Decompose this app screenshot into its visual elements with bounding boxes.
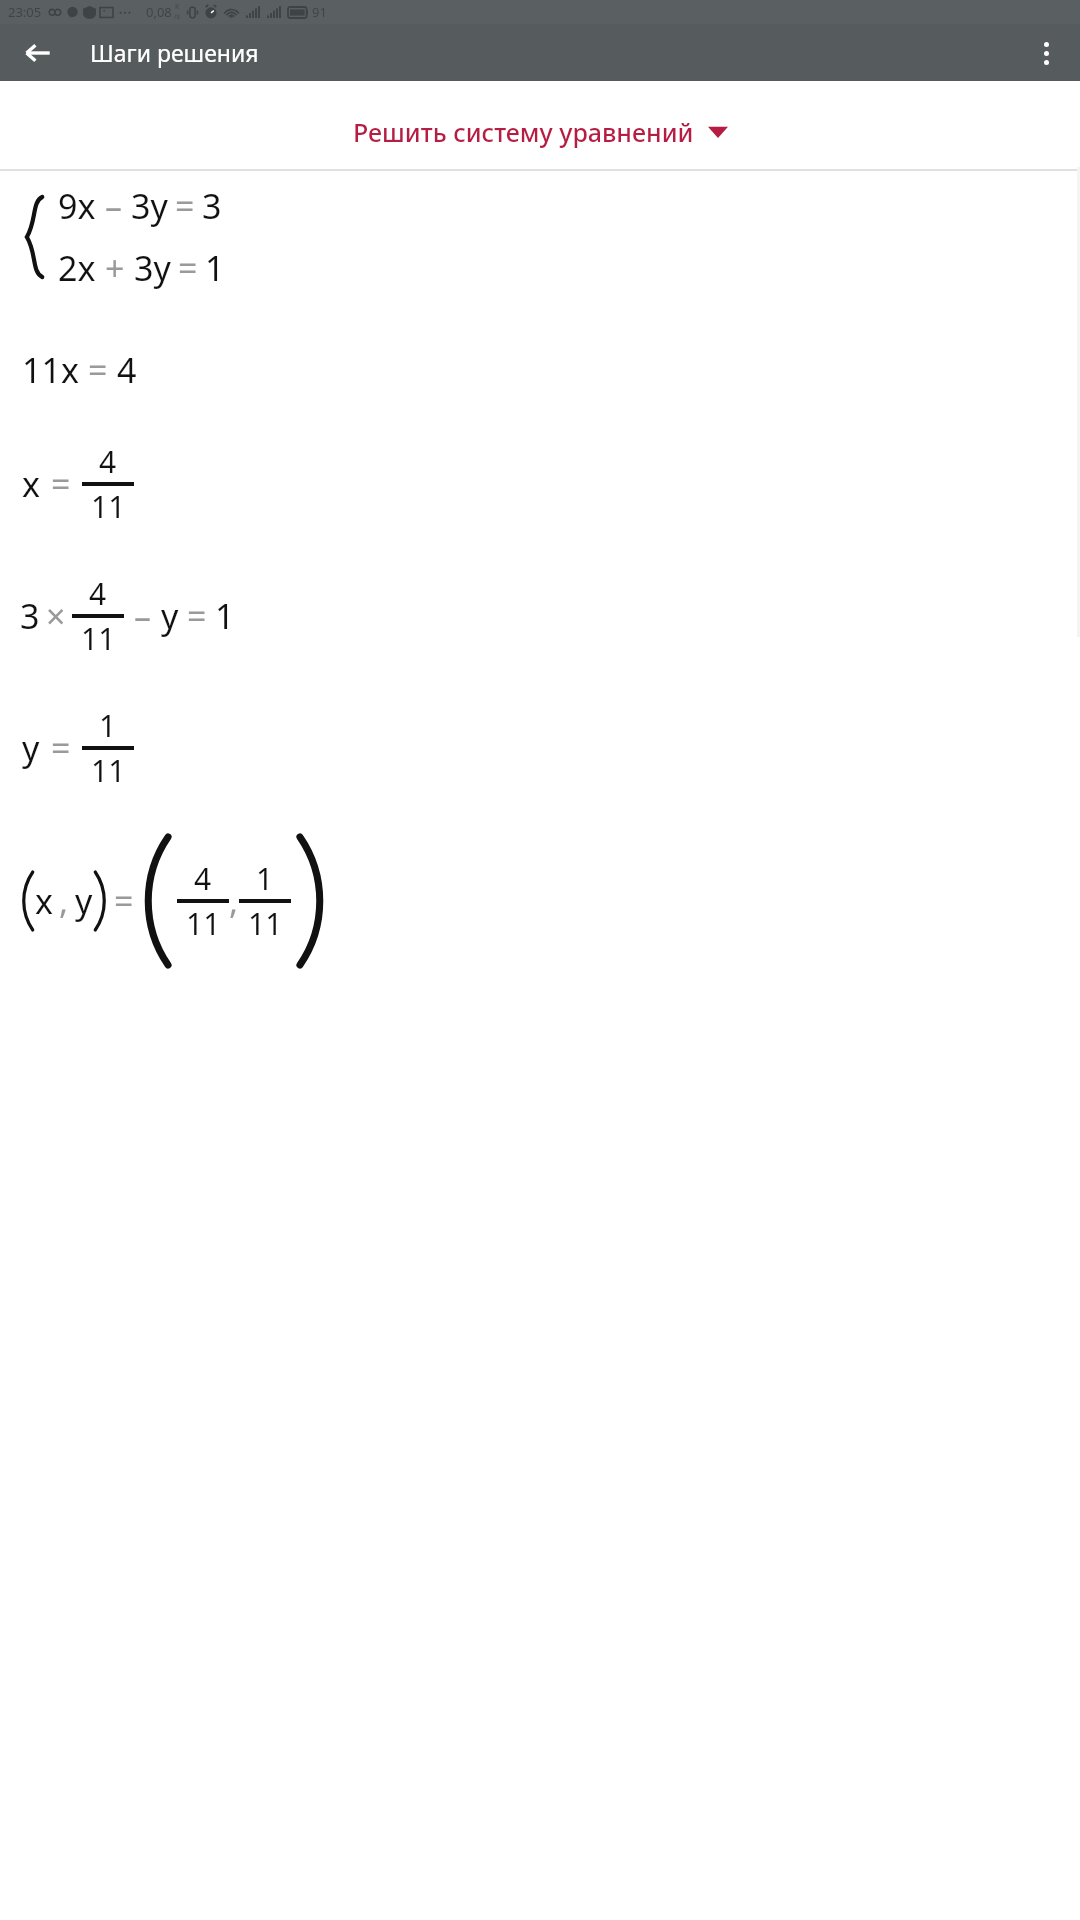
staticText: Шаги решения xyxy=(90,37,259,68)
staticText: , xyxy=(59,878,69,924)
staticText: y xyxy=(75,878,93,924)
staticText: 3 xyxy=(20,593,40,639)
staticText: = xyxy=(187,593,207,639)
staticText: 4 xyxy=(194,858,212,899)
staticText: , xyxy=(229,878,239,924)
staticText: = xyxy=(88,347,108,393)
staticText: + xyxy=(105,245,125,291)
button[interactable]: More options xyxy=(1018,25,1074,81)
staticText: y xyxy=(161,593,179,639)
staticText: 1 xyxy=(205,245,225,291)
staticText: = xyxy=(51,461,71,507)
staticText: y xyxy=(22,725,40,771)
staticText: 11 xyxy=(91,750,126,791)
staticText: 2x xyxy=(58,245,96,291)
staticText: = xyxy=(51,725,71,771)
staticText: 23:05 xyxy=(8,3,42,21)
staticText: = xyxy=(114,878,134,924)
staticText: Решить систему уравнений xyxy=(353,115,694,149)
staticText: 3y xyxy=(131,183,168,229)
button[interactable]: Решить систему уравнений xyxy=(0,109,1080,155)
staticText: = xyxy=(178,245,198,291)
staticText: 9x xyxy=(58,183,96,229)
staticText: = xyxy=(175,183,195,229)
staticText: 4 xyxy=(117,347,137,393)
staticText: 11 xyxy=(81,618,116,659)
staticText: 3y xyxy=(134,245,171,291)
staticText: × xyxy=(46,593,66,639)
staticText: x xyxy=(35,878,53,924)
staticText: 1 xyxy=(99,705,117,746)
staticText: 11x xyxy=(22,347,79,393)
staticText: 11 xyxy=(186,903,221,944)
staticText: /s xyxy=(174,12,180,22)
staticText: 91 xyxy=(312,3,327,21)
button[interactable]: Back xyxy=(10,25,66,81)
staticText: 1 xyxy=(256,858,274,899)
staticText: 4 xyxy=(89,573,107,614)
staticText: 11 xyxy=(91,486,126,527)
staticText: 1 xyxy=(215,593,235,639)
staticText: 0,08 xyxy=(146,3,172,21)
staticText: x xyxy=(22,461,40,507)
staticText: – xyxy=(134,593,151,639)
staticText: 4 xyxy=(99,441,117,482)
staticText: K xyxy=(175,2,180,12)
staticText: 11 xyxy=(248,903,283,944)
staticText: – xyxy=(105,183,122,229)
staticText: 3 xyxy=(202,183,222,229)
